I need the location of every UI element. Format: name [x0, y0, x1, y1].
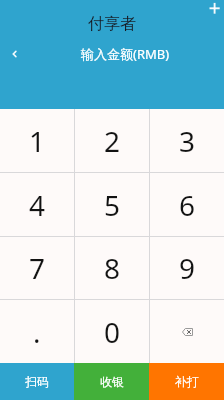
- staticText: 4: [29, 186, 46, 224]
- staticText: 6: [179, 186, 196, 224]
- button[interactable]: 7: [0, 237, 74, 299]
- staticText: 收银: [100, 374, 124, 389]
- button[interactable]: 3: [150, 109, 224, 172]
- button[interactable]: 扫码: [0, 363, 74, 400]
- button[interactable]: 1: [0, 109, 74, 172]
- button[interactable]: 补打: [149, 363, 224, 400]
- button[interactable]: 9: [150, 237, 224, 299]
- button[interactable]: 8: [75, 237, 149, 299]
- button[interactable]: Add: [200, 0, 224, 24]
- button[interactable]: Backspace: [150, 300, 224, 363]
- staticText: .: [33, 313, 41, 351]
- staticText: 7: [29, 249, 46, 287]
- staticText: 9: [179, 249, 196, 287]
- staticText: 8: [104, 249, 121, 287]
- button[interactable]: Back: [0, 40, 26, 68]
- button[interactable]: 2: [75, 109, 149, 172]
- staticText: 付享者: [88, 14, 136, 34]
- button[interactable]: 4: [0, 173, 74, 236]
- button[interactable]: 5: [75, 173, 149, 236]
- button[interactable]: .: [0, 300, 74, 363]
- staticText: 2: [104, 122, 121, 160]
- button[interactable]: 0: [75, 300, 149, 363]
- staticText: 5: [104, 186, 121, 224]
- staticText: 扫码: [25, 374, 49, 389]
- staticText: 输入金额(RMB): [81, 45, 170, 63]
- staticText: 1: [29, 122, 46, 160]
- staticText: 0: [104, 313, 121, 351]
- staticText: 3: [179, 122, 196, 160]
- staticText: 补打: [175, 374, 199, 389]
- button[interactable]: 6: [150, 173, 224, 236]
- button[interactable]: 收银: [74, 363, 149, 400]
